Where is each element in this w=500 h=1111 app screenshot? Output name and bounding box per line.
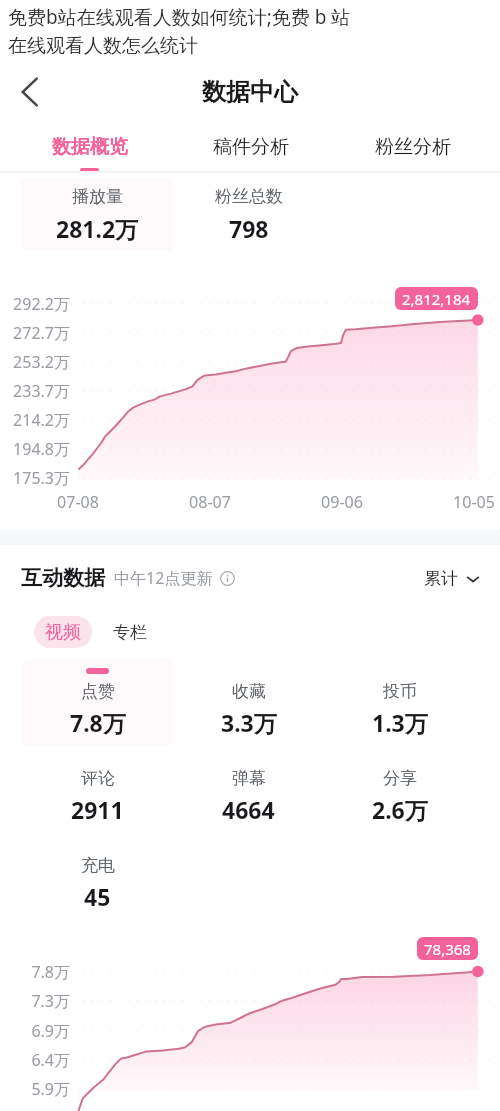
button[interactable]: 弹幕 xyxy=(173,746,324,833)
staticText: 粉丝分析 xyxy=(375,135,451,159)
button[interactable]: 充电 xyxy=(22,833,173,920)
button[interactable]: 评论 xyxy=(22,746,173,833)
staticText: 798 xyxy=(229,213,269,244)
staticText: 在线观看人数怎么统计 xyxy=(8,34,198,58)
button[interactable]: Back xyxy=(10,72,50,112)
staticText: 2,812,184 xyxy=(402,289,471,309)
staticText: 充电 xyxy=(81,855,115,876)
staticText: 5.9万 xyxy=(0,1078,70,1100)
button[interactable]: Info xyxy=(220,571,235,586)
staticText: 1.3万 xyxy=(372,707,428,738)
button[interactable]: 数据概览 xyxy=(9,135,170,172)
staticText: 累计 xyxy=(424,568,458,589)
staticText: 粉丝总数 xyxy=(215,186,283,207)
staticText: 7.8万 xyxy=(0,961,70,983)
staticText: 272.7万 xyxy=(0,322,70,344)
button[interactable]: 投币 xyxy=(324,659,475,746)
staticText: 2911 xyxy=(71,794,124,825)
staticText: 3.3万 xyxy=(221,707,277,738)
staticText: 点赞 xyxy=(81,681,115,702)
staticText: 中午12点更新 xyxy=(114,567,213,589)
button[interactable]: 视频 xyxy=(34,616,92,648)
staticText: 78,368 xyxy=(424,939,471,959)
staticText: 7.3万 xyxy=(0,990,70,1012)
button[interactable]: 粉丝分析 xyxy=(332,135,494,172)
staticText: 4664 xyxy=(222,794,275,825)
staticText: 292.2万 xyxy=(0,293,70,315)
staticText: 分享 xyxy=(383,768,417,789)
staticText: 免费b站在线观看人数如何统计;免费 b 站 xyxy=(8,4,351,30)
button[interactable]: 累计 xyxy=(424,568,480,589)
button[interactable]: 播放量 xyxy=(21,178,173,251)
staticText: 弹幕 xyxy=(232,768,266,789)
staticText: 10-05 xyxy=(448,491,500,513)
staticText: 09-06 xyxy=(316,491,368,513)
staticText: 253.2万 xyxy=(0,351,70,373)
staticText: 6.9万 xyxy=(0,1020,70,1042)
staticText: 07-08 xyxy=(52,491,104,513)
staticText: 6.4万 xyxy=(0,1049,70,1071)
staticText: 互动数据 xyxy=(21,565,105,591)
button[interactable]: 点赞 xyxy=(22,659,173,746)
staticText: 2.6万 xyxy=(372,794,428,825)
staticText: 收藏 xyxy=(232,681,266,702)
button[interactable]: 收藏 xyxy=(173,659,324,746)
staticText: 专栏 xyxy=(113,622,147,643)
staticText: 194.8万 xyxy=(0,438,70,460)
staticText: 233.7万 xyxy=(0,380,70,402)
staticText: 评论 xyxy=(81,768,115,789)
staticText: 175.3万 xyxy=(0,467,70,489)
staticText: 45 xyxy=(84,881,111,912)
staticText: 214.2万 xyxy=(0,409,70,431)
staticText: 数据中心 xyxy=(202,77,298,107)
staticText: 播放量 xyxy=(72,186,123,207)
button[interactable]: 专栏 xyxy=(113,616,147,648)
staticText: 视频 xyxy=(45,621,81,644)
button[interactable]: 粉丝总数 xyxy=(173,178,324,251)
button[interactable]: 分享 xyxy=(324,746,475,833)
staticText: 数据概览 xyxy=(52,135,128,159)
staticText: 投币 xyxy=(383,681,417,702)
button[interactable]: 稿件分析 xyxy=(170,135,332,172)
staticText: 08-07 xyxy=(184,491,236,513)
staticText: 稿件分析 xyxy=(213,135,289,159)
staticText: 281.2万 xyxy=(56,213,139,244)
staticText: 7.8万 xyxy=(70,707,126,738)
